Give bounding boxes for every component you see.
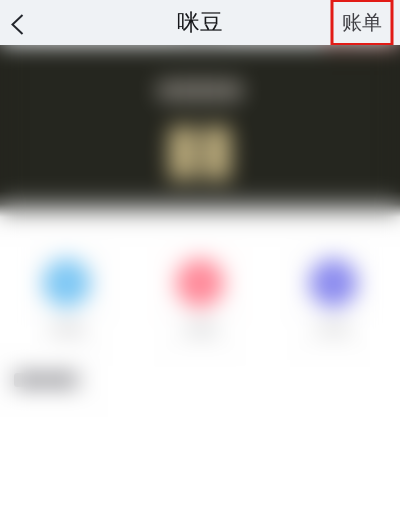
staticText: 账单 [342, 10, 382, 35]
button[interactable]: 账单 [332, 0, 400, 44]
button[interactable]: 充值 [0, 217, 133, 358]
button[interactable]: Back [0, 0, 38, 45]
button[interactable]: 任务 [267, 217, 400, 358]
staticText: 充值 [51, 319, 83, 339]
staticText: 兑换 [184, 319, 216, 339]
button[interactable]: 兑换 [133, 217, 267, 358]
staticText: 咪豆 [177, 9, 223, 36]
